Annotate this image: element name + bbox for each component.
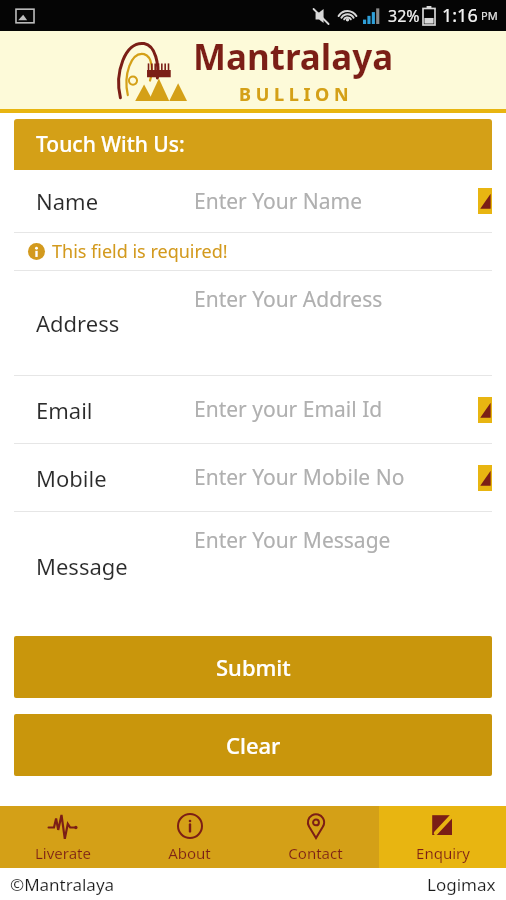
staticText: Enter Your Address [194, 285, 383, 314]
staticText: Enter Your Name [194, 187, 363, 216]
staticText: Contact [288, 843, 343, 863]
button[interactable]: Name [14, 170, 492, 232]
staticText: Liverate [35, 843, 91, 863]
staticText: Mobile [36, 463, 107, 493]
staticText: Enquiry [416, 843, 470, 863]
button[interactable]: Enquiry [379, 806, 506, 868]
staticText: Mantralaya [193, 33, 394, 81]
staticText: Address [36, 308, 120, 338]
button[interactable]: Email [14, 376, 492, 443]
button[interactable]: Liverate [0, 806, 126, 868]
staticText: 1:16 [442, 3, 478, 28]
button[interactable]: Enter Your Message [14, 512, 492, 620]
staticText: Message [36, 551, 128, 581]
staticText: Touch With Us: [36, 130, 185, 159]
staticText: ©Mantralaya [10, 873, 115, 896]
button[interactable]: Contact [252, 806, 379, 868]
staticText: Enter your Email Id [194, 395, 383, 424]
button[interactable]: About [126, 806, 252, 868]
button[interactable]: Submit [14, 636, 492, 698]
staticText: B U L L I O N [239, 82, 349, 107]
staticText: Submit [216, 652, 291, 682]
staticText: Name [36, 186, 99, 216]
button[interactable]: Clear [14, 714, 492, 776]
staticText: PM [481, 8, 498, 23]
button[interactable]: Mobile [14, 444, 492, 511]
button[interactable]: Enter Your Address [14, 271, 492, 375]
staticText: About [168, 843, 211, 863]
staticText: Logimax [427, 873, 496, 896]
staticText: Email [36, 395, 93, 425]
staticText: Clear [226, 730, 281, 760]
staticText: Enter Your Message [194, 526, 391, 555]
staticText: 32% [388, 5, 420, 27]
staticText: Enter Your Mobile No [194, 463, 405, 492]
staticText: This field is required! [52, 239, 228, 264]
button[interactable]: Touch With Us: [14, 119, 492, 170]
